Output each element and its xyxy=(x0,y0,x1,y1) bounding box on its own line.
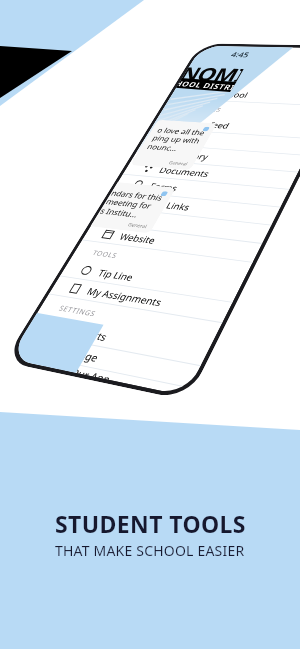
button[interactable]: ndars for this meeting for s Institu... xyxy=(90,182,176,233)
button[interactable]: Events xyxy=(142,129,300,155)
staticText: Quick Links xyxy=(138,197,193,213)
button[interactable]: Newsfeed xyxy=(151,114,300,138)
button[interactable]: My Alerts xyxy=(25,314,211,365)
staticText: General xyxy=(168,160,189,167)
staticText: SCHOOL DISTRICT xyxy=(175,78,237,92)
button[interactable]: My Assignments xyxy=(49,276,232,322)
staticText: General xyxy=(127,221,149,230)
staticText: TOOLS xyxy=(91,248,120,260)
staticText: MENOMINEE xyxy=(178,61,247,87)
staticText: Tip Line xyxy=(96,266,137,283)
staticText: Website xyxy=(117,230,159,246)
staticText: MY SCHOOLS xyxy=(197,75,246,83)
staticText: SETTINGS xyxy=(57,303,98,318)
button[interactable]: Directory xyxy=(132,144,300,172)
staticText: Documents xyxy=(157,164,212,179)
staticText: THAT MAKE SCHOOL EASIER xyxy=(55,541,245,560)
staticText: STUDENT TOOLS xyxy=(55,508,246,539)
button[interactable]: Forms xyxy=(113,174,289,207)
button[interactable]: Website xyxy=(82,223,262,262)
button[interactable]: Language xyxy=(13,333,200,387)
button[interactable]: Documents xyxy=(123,159,298,189)
staticText: Newsfeed xyxy=(185,118,232,131)
staticText: ndars for this meeting for s Institu... xyxy=(98,188,165,221)
button[interactable]: Tip Line xyxy=(60,258,242,302)
staticText: 4:45 xyxy=(229,50,251,59)
staticText: RESOURCES xyxy=(179,104,224,113)
button[interactable]: o love all the ping up with nounc... xyxy=(130,120,217,170)
staticText: Directory xyxy=(166,149,211,162)
staticText: Events xyxy=(176,133,209,145)
staticText: My School xyxy=(203,88,250,100)
staticText: Map xyxy=(127,213,153,227)
button[interactable]: Quick Links xyxy=(103,190,280,225)
staticText: o love all the ping up with nounc... xyxy=(145,125,208,154)
button[interactable]: Map xyxy=(93,207,271,243)
button[interactable]: My School xyxy=(170,85,300,106)
button[interactable]: Share Our App xyxy=(9,352,189,396)
staticText: My Assignments xyxy=(85,285,165,309)
staticText: Language xyxy=(49,343,102,365)
staticText: My Alerts xyxy=(61,323,111,344)
staticText: Forms xyxy=(147,180,181,194)
staticText: Share Our App xyxy=(43,359,114,380)
